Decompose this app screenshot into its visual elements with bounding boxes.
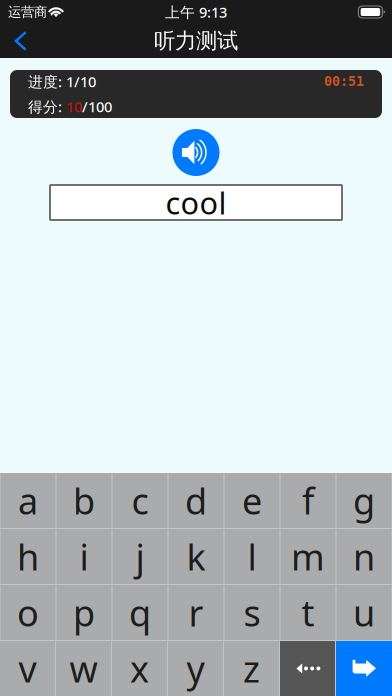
staticText: x bbox=[130, 645, 149, 692]
button[interactable]: b bbox=[56, 473, 111, 528]
button[interactable]: w bbox=[56, 641, 111, 696]
button[interactable]: l bbox=[224, 529, 279, 584]
staticText: o bbox=[17, 589, 39, 636]
staticText: w bbox=[69, 645, 97, 692]
staticText: cool bbox=[165, 182, 226, 223]
staticText: y bbox=[186, 645, 204, 692]
button[interactable]: d bbox=[168, 473, 223, 528]
staticText: i bbox=[79, 533, 88, 580]
staticText: h bbox=[17, 533, 39, 580]
button[interactable]: f bbox=[280, 473, 335, 528]
button[interactable]: k bbox=[168, 529, 223, 584]
button[interactable]: u bbox=[336, 585, 391, 640]
button[interactable]: q bbox=[112, 585, 167, 640]
staticText: 得分: bbox=[28, 97, 66, 116]
staticText: 上午 9:13 bbox=[165, 2, 227, 22]
button[interactable]: t bbox=[280, 585, 335, 640]
staticText: z bbox=[243, 645, 260, 692]
staticText: p bbox=[73, 589, 95, 636]
button[interactable]: v bbox=[0, 641, 55, 696]
button[interactable]: c bbox=[112, 473, 167, 528]
staticText: t bbox=[301, 589, 314, 636]
staticText: g bbox=[353, 477, 375, 524]
button[interactable]: j bbox=[112, 529, 167, 584]
staticText: v bbox=[18, 645, 36, 692]
staticText: 00:51 bbox=[324, 74, 364, 89]
button[interactable]: s bbox=[224, 585, 279, 640]
button[interactable]: y bbox=[168, 641, 223, 696]
button[interactable]: a bbox=[0, 473, 55, 528]
staticText: n bbox=[353, 533, 375, 580]
staticText: r bbox=[188, 589, 203, 636]
button[interactable]: h bbox=[0, 529, 55, 584]
staticText: l bbox=[247, 533, 256, 580]
staticText: 进度: 1/10 bbox=[28, 72, 96, 91]
staticText: j bbox=[135, 533, 144, 580]
button[interactable]: g bbox=[336, 473, 391, 528]
staticText: d bbox=[185, 477, 207, 524]
staticText: 10 bbox=[66, 97, 82, 116]
staticText: /100 bbox=[82, 97, 112, 116]
button[interactable]: x bbox=[112, 641, 167, 696]
staticText: e bbox=[242, 477, 262, 524]
button[interactable]: o bbox=[0, 585, 55, 640]
staticText: f bbox=[302, 477, 314, 524]
button[interactable]: r bbox=[168, 585, 223, 640]
staticText: s bbox=[243, 589, 260, 636]
staticText: a bbox=[18, 477, 38, 524]
button[interactable]: z bbox=[224, 641, 279, 696]
staticText: c bbox=[131, 477, 148, 524]
button[interactable]: Back bbox=[0, 24, 42, 58]
button[interactable]: Submit bbox=[336, 641, 392, 696]
staticText: b bbox=[73, 477, 95, 524]
button[interactable]: Play audio bbox=[172, 129, 219, 176]
staticText: m bbox=[291, 533, 325, 580]
staticText: 运营商 bbox=[8, 4, 47, 20]
button[interactable]: e bbox=[224, 473, 279, 528]
staticText: u bbox=[353, 589, 375, 636]
button[interactable]: p bbox=[56, 585, 111, 640]
staticText: q bbox=[129, 589, 151, 636]
staticText: k bbox=[186, 533, 205, 580]
button[interactable]: Backspace bbox=[280, 641, 335, 696]
button[interactable]: m bbox=[280, 529, 335, 584]
button[interactable]: n bbox=[336, 529, 391, 584]
staticText: 听力测试 bbox=[154, 28, 238, 54]
button[interactable]: i bbox=[56, 529, 111, 584]
